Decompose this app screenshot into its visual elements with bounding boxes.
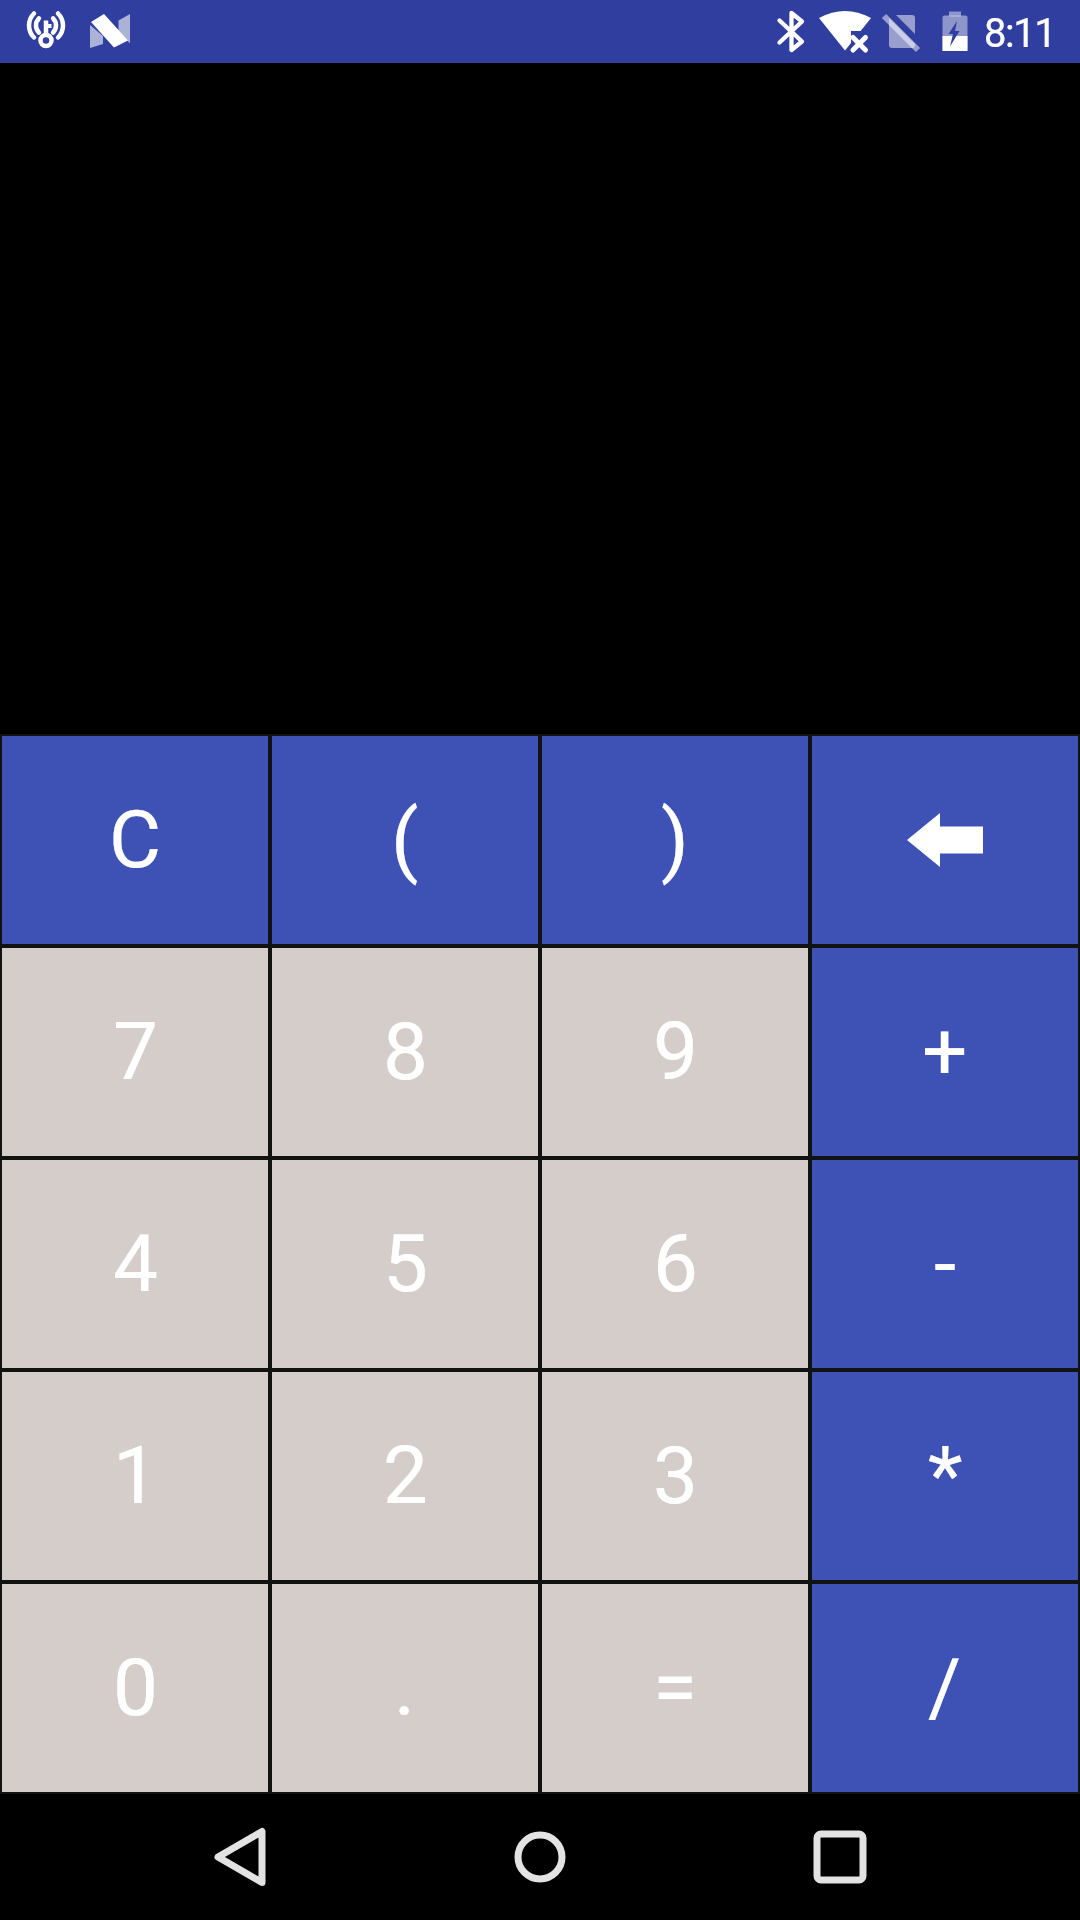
staticText: 5: [383, 1217, 428, 1311]
button[interactable]: 9: [540, 946, 810, 1158]
button[interactable]: 1: [0, 1370, 270, 1582]
button[interactable]: -: [810, 1158, 1080, 1370]
button[interactable]: [190, 1807, 290, 1907]
staticText: -: [934, 1217, 957, 1311]
staticText: (: [391, 793, 419, 887]
staticText: /: [928, 1641, 962, 1735]
button[interactable]: +: [810, 946, 1080, 1158]
button[interactable]: [490, 1807, 590, 1907]
button[interactable]: 0: [0, 1582, 270, 1794]
staticText: =: [653, 1641, 697, 1735]
button[interactable]: 6: [540, 1158, 810, 1370]
staticText: C: [109, 793, 162, 887]
button[interactable]: [790, 1807, 890, 1907]
staticText: .: [394, 1641, 416, 1735]
staticText: 0: [113, 1641, 158, 1735]
staticText: 4: [113, 1217, 158, 1311]
button[interactable]: (: [270, 734, 540, 946]
staticText: ): [661, 793, 689, 887]
staticText: 1: [113, 1429, 158, 1523]
button[interactable]: ): [540, 734, 810, 946]
button[interactable]: /: [810, 1582, 1080, 1794]
button[interactable]: 5: [270, 1158, 540, 1370]
button[interactable]: 8: [270, 946, 540, 1158]
button[interactable]: 7: [0, 946, 270, 1158]
button[interactable]: =: [540, 1582, 810, 1794]
button[interactable]: 2: [270, 1370, 540, 1582]
button[interactable]: *: [810, 1370, 1080, 1582]
staticText: 8: [383, 1005, 428, 1099]
staticText: *: [928, 1429, 963, 1523]
staticText: 8:11: [984, 10, 1056, 57]
staticText: 7: [113, 1005, 158, 1099]
button[interactable]: 3: [540, 1370, 810, 1582]
staticText: 9: [653, 1005, 698, 1099]
button[interactable]: .: [270, 1582, 540, 1794]
button[interactable]: [810, 734, 1080, 946]
staticText: +: [922, 1005, 968, 1099]
button[interactable]: 4: [0, 1158, 270, 1370]
button[interactable]: C: [0, 734, 270, 946]
staticText: 3: [653, 1429, 698, 1523]
staticText: 2: [383, 1429, 428, 1523]
staticText: 6: [653, 1217, 698, 1311]
